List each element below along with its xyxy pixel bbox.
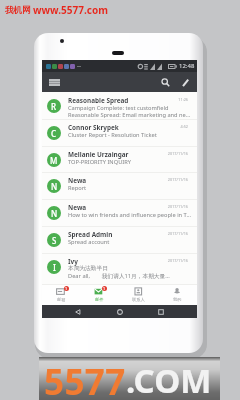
staticText: TOP-PRIORITY INQUIRY [68, 158, 131, 166]
staticText: M [50, 155, 58, 166]
staticText: 2017/11/16 [155, 258, 188, 263]
staticText: 2017/11/16 [155, 177, 188, 182]
staticText: Campaign Complete: test customfield [68, 104, 169, 112]
staticText: N [51, 181, 58, 192]
button[interactable]: Menu [45, 73, 63, 91]
button[interactable]: R [42, 92, 197, 119]
button[interactable]: Home [114, 306, 126, 318]
staticText: C [51, 128, 57, 139]
button[interactable]: Recents [155, 306, 167, 318]
staticText: R [51, 101, 57, 112]
staticText: www.5577.com [33, 3, 108, 17]
staticText: Mellanie Urzaingar [68, 150, 129, 159]
button[interactable]: N [42, 199, 197, 226]
staticText: N [51, 208, 58, 219]
button[interactable]: 1 [80, 284, 119, 305]
button[interactable]: I [42, 253, 197, 280]
staticText: 12:48 [179, 62, 195, 70]
button[interactable]: M [42, 146, 197, 173]
staticText: 邮件 [95, 297, 104, 302]
staticText: 我的 [173, 297, 182, 302]
staticText: 我机网 [5, 5, 31, 16]
button[interactable]: Compose [176, 73, 194, 91]
staticText: 2017/11/16 [155, 231, 188, 236]
staticText: 联系人 [132, 297, 145, 302]
staticText: Newa [68, 176, 87, 185]
button[interactable]: C [42, 119, 197, 146]
button[interactable]: 1 [42, 284, 80, 305]
button[interactable]: 我的 [158, 284, 197, 305]
button[interactable]: 联系人 [119, 284, 158, 305]
button[interactable]: Search [156, 73, 174, 91]
staticText: .COM [126, 358, 212, 400]
staticText: Dear all, 我们请人11月，本期大量... [68, 272, 170, 280]
staticText: 4:52 [155, 124, 188, 129]
staticText: How to win friends and influence people … [68, 211, 191, 219]
staticText: Reasonable Spread [68, 96, 129, 105]
staticText: Newa [68, 203, 87, 212]
staticText: 5577 [44, 358, 126, 400]
staticText: 11:26 [155, 97, 188, 102]
staticText: 1 [103, 286, 106, 291]
staticText: S [52, 235, 57, 246]
button[interactable]: N [42, 172, 197, 199]
staticText: 2017/11/16 [155, 151, 188, 156]
staticText: Report [68, 184, 87, 192]
button[interactable]: S [42, 226, 197, 253]
staticText: Cluster Report - Resolution Ticket [68, 131, 157, 139]
button[interactable]: Back [72, 306, 84, 318]
staticText: 邮箱 [57, 297, 66, 302]
staticText: I [53, 262, 56, 273]
staticText: 本周为法勤半日 [68, 265, 108, 272]
staticText: Spread Admin [68, 230, 113, 239]
staticText: 2017/11/16 [155, 204, 188, 209]
staticText: 1 [65, 286, 68, 291]
staticText: Spread account [68, 238, 110, 246]
staticText: Ivy [68, 257, 78, 266]
staticText: Connor Skrypek [68, 123, 119, 132]
staticText: Reasonable Spread: Email marketing and n… [68, 111, 191, 119]
